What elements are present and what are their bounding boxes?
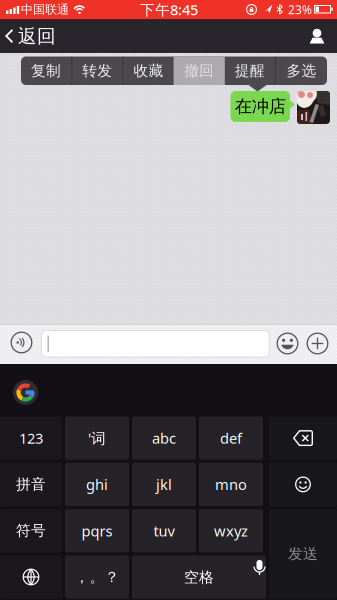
staticText: 收藏 bbox=[133, 62, 163, 80]
staticText: '词 bbox=[88, 428, 106, 448]
button[interactable]: 多选 bbox=[276, 56, 327, 85]
button[interactable]: ，。？ bbox=[65, 555, 129, 599]
button[interactable]: tuv bbox=[132, 509, 196, 552]
button[interactable]: 复制 bbox=[21, 56, 71, 85]
staticText: ，。？ bbox=[74, 568, 119, 586]
button[interactable]: '词 bbox=[65, 416, 129, 460]
button[interactable]: 拼音 bbox=[0, 463, 62, 506]
button[interactable]: 语音输入 bbox=[7, 328, 35, 356]
staticText: 复制 bbox=[31, 62, 61, 80]
button[interactable]: 提醒 bbox=[225, 56, 275, 85]
button[interactable]: def bbox=[199, 416, 263, 460]
staticText: abc bbox=[152, 428, 176, 448]
staticText: 转发 bbox=[82, 62, 112, 80]
button[interactable]: abc bbox=[132, 416, 196, 460]
staticText: 在冲店 bbox=[235, 96, 286, 117]
button[interactable]: 在冲店 bbox=[228, 91, 292, 122]
staticText: 中国联通 bbox=[21, 2, 69, 17]
button[interactable]: wxyz bbox=[199, 509, 263, 552]
button[interactable]: Google bbox=[11, 378, 40, 407]
staticText: pqrs bbox=[81, 521, 112, 540]
staticText: ghi bbox=[86, 475, 108, 494]
button[interactable]: 联系人资料 bbox=[297, 19, 337, 53]
staticText: 返回 bbox=[18, 25, 56, 48]
staticText: 提醒 bbox=[235, 62, 265, 80]
button[interactable]: 撤回 bbox=[174, 56, 225, 85]
button[interactable]: 返回 bbox=[0, 19, 56, 53]
button[interactable]: 表情 bbox=[269, 463, 337, 506]
staticText: 撤回 bbox=[184, 62, 214, 80]
button[interactable]: 切换键盘 bbox=[0, 555, 62, 599]
staticText: 拼音 bbox=[16, 475, 46, 493]
staticText: 空格 bbox=[184, 568, 214, 586]
staticText: 123 bbox=[19, 428, 43, 448]
button[interactable]: jkl bbox=[132, 463, 196, 506]
staticText: 发送 bbox=[288, 545, 318, 563]
staticText: def bbox=[220, 428, 242, 448]
staticText: 下午8:45 bbox=[140, 0, 198, 19]
button[interactable]: 表情 bbox=[273, 329, 301, 357]
staticText: mno bbox=[215, 475, 247, 494]
button[interactable]: 更多 bbox=[303, 329, 331, 357]
staticText: 23% bbox=[288, 1, 312, 17]
staticText: wxyz bbox=[214, 521, 248, 540]
button[interactable]: 123 bbox=[0, 416, 62, 460]
button[interactable]: mno bbox=[199, 463, 263, 506]
button[interactable]: 空格 bbox=[132, 555, 266, 599]
button[interactable]: 语音输入 bbox=[248, 555, 271, 579]
button[interactable]: 转发 bbox=[72, 56, 122, 85]
button[interactable]: 符号 bbox=[0, 509, 62, 552]
button[interactable]: 头像 bbox=[297, 91, 330, 124]
button[interactable]: 收藏 bbox=[123, 56, 174, 85]
staticText: 符号 bbox=[16, 522, 46, 540]
button[interactable]: pqrs bbox=[65, 509, 129, 552]
staticText: jkl bbox=[156, 475, 172, 494]
button[interactable]: 删除 bbox=[269, 416, 337, 460]
staticText: tuv bbox=[153, 521, 174, 540]
button[interactable]: ghi bbox=[65, 463, 129, 506]
button[interactable]: 发送 bbox=[269, 509, 337, 599]
staticText: 多选 bbox=[286, 62, 316, 80]
